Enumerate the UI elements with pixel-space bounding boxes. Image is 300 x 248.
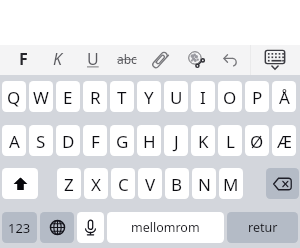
staticText: B	[171, 173, 183, 196]
staticText: E	[63, 86, 73, 109]
staticText: K	[198, 130, 209, 153]
button[interactable]: G	[110, 125, 134, 156]
button[interactable]: Attach file	[144, 45, 175, 75]
staticText: H	[143, 130, 156, 153]
staticText: X	[91, 173, 101, 196]
button[interactable]: D	[56, 125, 80, 156]
staticText: G	[116, 130, 129, 153]
button[interactable]: U	[164, 81, 188, 112]
staticText: Å	[279, 86, 290, 109]
button[interactable]: P	[245, 81, 269, 112]
button[interactable]: Strikethrough	[111, 45, 143, 75]
button[interactable]: Underline	[77, 45, 108, 75]
button[interactable]: A	[2, 125, 26, 156]
staticText: Æ	[277, 130, 292, 153]
button[interactable]: Undo	[215, 45, 245, 75]
button[interactable]: Å	[272, 81, 296, 112]
staticText: retur	[248, 219, 278, 236]
button[interactable]: 123	[2, 212, 37, 243]
staticText: F	[19, 48, 28, 70]
button[interactable]: L	[218, 125, 242, 156]
button[interactable]: O	[218, 81, 242, 112]
staticText: N	[198, 173, 211, 196]
button[interactable]: C	[111, 168, 135, 199]
button[interactable]: H	[137, 125, 161, 156]
staticText: Z	[64, 173, 74, 196]
staticText: I	[200, 86, 206, 109]
staticText: P	[252, 86, 263, 109]
staticText: Q	[7, 86, 21, 109]
button[interactable]: F	[83, 125, 107, 156]
button[interactable]: Italic	[42, 45, 73, 75]
staticText: O	[223, 86, 237, 109]
button[interactable]: Switch keyboard	[40, 212, 74, 243]
staticText: R	[90, 86, 101, 109]
button[interactable]: Shift	[2, 168, 38, 199]
staticText: Y	[144, 86, 154, 109]
staticText: T	[117, 86, 127, 109]
staticText: W	[33, 86, 49, 109]
button[interactable]: Backspace	[266, 168, 299, 199]
staticText: V	[145, 173, 156, 196]
button[interactable]: Insert link	[181, 45, 212, 75]
staticText: U	[170, 86, 183, 109]
staticText: F	[91, 130, 100, 153]
button[interactable]: N	[192, 168, 216, 199]
staticText: K	[53, 48, 62, 70]
button[interactable]: W	[29, 81, 53, 112]
button[interactable]: Hide keyboard	[259, 45, 290, 75]
button[interactable]: J	[164, 125, 188, 156]
button[interactable]: B	[165, 168, 189, 199]
button[interactable]: K	[191, 125, 215, 156]
staticText: M	[223, 173, 239, 196]
button[interactable]: I	[191, 81, 215, 112]
button[interactable]: retur	[227, 212, 298, 243]
button[interactable]: S	[29, 125, 53, 156]
staticText: S	[36, 130, 46, 153]
button[interactable]: Æ	[272, 125, 296, 156]
staticText: C	[118, 173, 129, 196]
staticText: mellomrom	[131, 219, 200, 236]
button[interactable]: R	[83, 81, 107, 112]
staticText: abc	[117, 51, 137, 67]
staticText: A	[9, 130, 20, 153]
button[interactable]: Ø	[245, 125, 269, 156]
button[interactable]: Y	[137, 81, 161, 112]
button[interactable]: T	[110, 81, 134, 112]
button[interactable]: M	[219, 168, 243, 199]
button[interactable]: E	[56, 81, 80, 112]
button[interactable]: Dictate	[77, 212, 104, 243]
button[interactable]: mellomrom	[107, 212, 224, 243]
button[interactable]: V	[138, 168, 162, 199]
staticText: 123	[8, 219, 31, 237]
staticText: L	[226, 130, 235, 153]
staticText: Ø	[250, 130, 264, 153]
staticText: U	[87, 48, 99, 70]
button[interactable]: X	[84, 168, 108, 199]
button[interactable]: Z	[57, 168, 81, 199]
button[interactable]: Q	[2, 81, 26, 112]
button[interactable]: Bold	[8, 45, 39, 75]
staticText: D	[62, 130, 75, 153]
staticText: J	[174, 130, 179, 153]
